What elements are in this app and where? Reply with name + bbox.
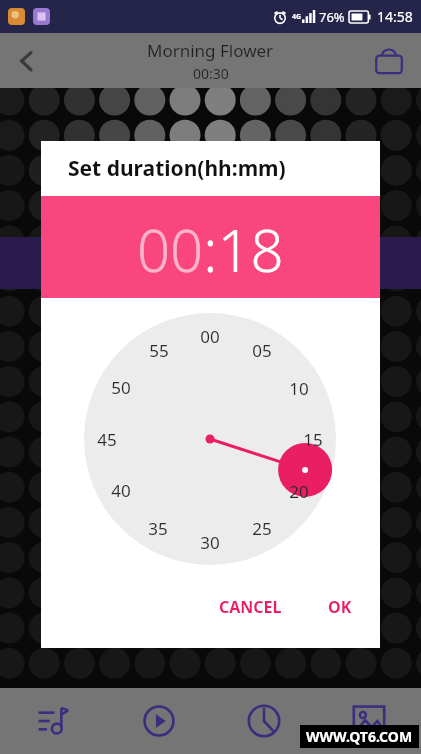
staticText: Morning Flower xyxy=(147,39,274,62)
staticText: 40 xyxy=(111,479,131,502)
button[interactable]: Shop xyxy=(365,37,413,85)
staticText: 35 xyxy=(148,517,168,540)
button[interactable]: 00:18 xyxy=(137,210,284,289)
staticText: 10 xyxy=(289,377,309,400)
button[interactable]: Back xyxy=(0,34,54,88)
button[interactable]: Play xyxy=(106,688,211,754)
button[interactable] xyxy=(41,298,380,590)
staticText: OK xyxy=(328,596,352,618)
staticText: 55 xyxy=(149,339,169,362)
staticText: 50 xyxy=(111,376,131,399)
staticText: 14:58 xyxy=(377,7,413,26)
staticText: 76% xyxy=(319,8,345,26)
staticText: 25 xyxy=(252,517,272,540)
staticText: 4G xyxy=(292,12,302,22)
button[interactable]: CANCEL xyxy=(205,590,296,624)
staticText: 45 xyxy=(97,428,117,451)
button[interactable]: OK xyxy=(314,590,366,624)
staticText: WWW.QT6.COM xyxy=(306,727,413,746)
staticText: 20 xyxy=(289,480,309,503)
staticText: 15 xyxy=(303,428,323,451)
staticText: 00 xyxy=(200,325,220,348)
button[interactable]: Timer xyxy=(211,688,316,754)
staticText: Set duration(hh:mm) xyxy=(68,154,286,183)
staticText: 05 xyxy=(252,339,272,362)
staticText: CANCEL xyxy=(219,596,282,618)
staticText: 30 xyxy=(200,531,220,554)
staticText: 00:30 xyxy=(193,64,229,83)
button[interactable]: Gallery xyxy=(316,688,421,754)
button[interactable]: Playlist xyxy=(0,688,106,754)
